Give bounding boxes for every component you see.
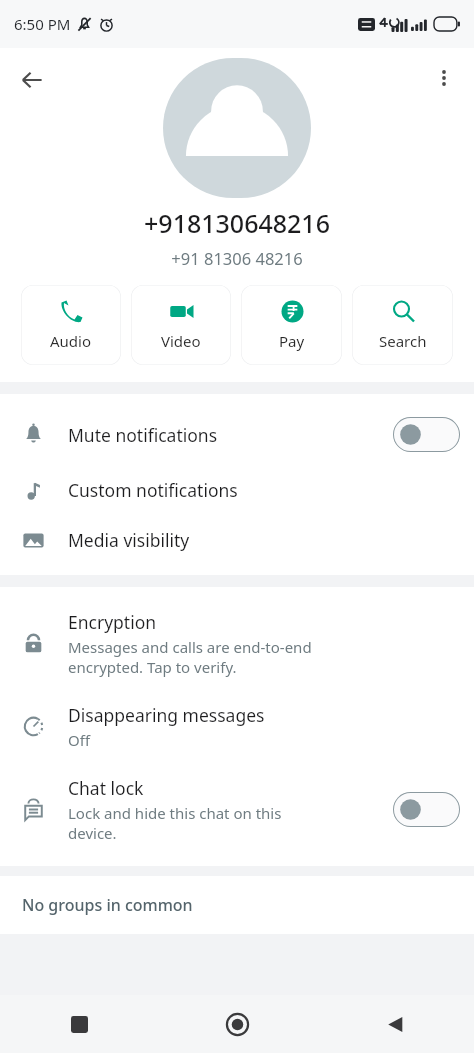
staticText: Off: [68, 730, 91, 750]
staticText: Audio: [50, 331, 92, 351]
staticText: Lock and hide this chat on this device.: [68, 803, 282, 843]
staticText: Video: [161, 331, 201, 351]
button[interactable]: Media visibility: [0, 515, 474, 565]
button[interactable]: Custom notifications: [0, 465, 474, 515]
button[interactable]: Profile photo: [163, 58, 311, 198]
staticText: Pay: [279, 331, 305, 351]
button[interactable]: Back: [8, 56, 56, 104]
button[interactable]: Encryption: [0, 597, 474, 690]
button[interactable]: Pay: [241, 285, 342, 365]
button[interactable]: No groups in common: [0, 876, 474, 934]
button[interactable]: Home: [158, 995, 316, 1053]
staticText: Chat lock: [68, 776, 144, 800]
button[interactable]: Toggle: [393, 792, 460, 827]
button[interactable]: Mute notifications: [0, 404, 474, 465]
button[interactable]: Chat lock: [0, 763, 474, 856]
button[interactable]: Recent apps: [0, 995, 158, 1053]
staticText: +91 81306 48216: [0, 247, 474, 269]
staticText: Search: [379, 331, 427, 351]
button[interactable]: Audio: [21, 285, 121, 365]
button[interactable]: Toggle: [393, 417, 460, 452]
button[interactable]: Back: [316, 995, 474, 1053]
button[interactable]: Disappearing messages: [0, 690, 474, 763]
button[interactable]: Search: [352, 285, 453, 365]
staticText: 6:50 PM: [14, 14, 71, 34]
staticText: No groups in common: [22, 894, 193, 916]
staticText: Custom notifications: [68, 478, 238, 502]
staticText: Messages and calls are end-to-end encryp…: [68, 637, 312, 677]
button[interactable]: Video: [131, 285, 231, 365]
staticText: Media visibility: [68, 528, 190, 552]
button[interactable]: More options: [422, 56, 466, 100]
staticText: +918130648216: [0, 206, 474, 240]
staticText: Mute notifications: [68, 423, 218, 447]
staticText: Disappearing messages: [68, 703, 265, 727]
staticText: Encryption: [68, 610, 157, 634]
